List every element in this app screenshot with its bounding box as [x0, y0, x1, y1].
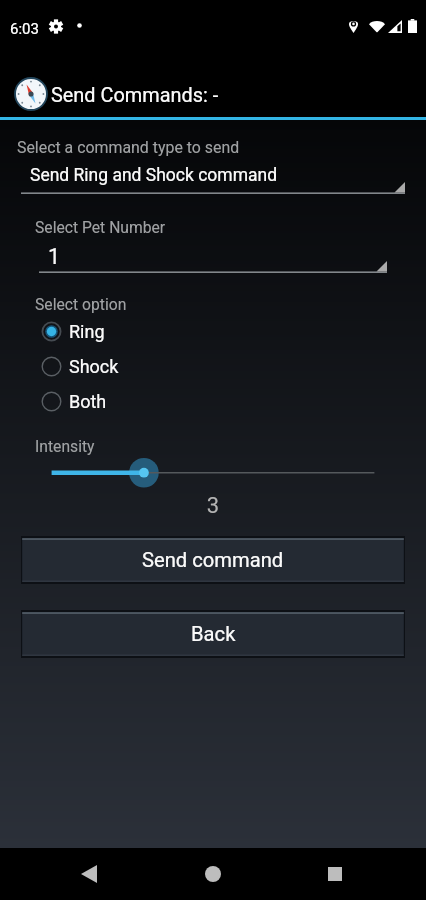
button[interactable]: Send Ring and Shock command	[21, 165, 405, 194]
staticText: Send Ring and Shock command	[30, 165, 278, 186]
staticText: Send command	[142, 548, 284, 572]
button[interactable]: Send command	[21, 536, 405, 584]
staticText: Shock	[69, 356, 119, 377]
staticText: Select a command type to send	[17, 138, 240, 157]
staticText: Select option	[35, 295, 127, 313]
staticText: 6:03	[10, 20, 39, 38]
staticText: Intensity	[35, 437, 95, 455]
staticText: Both	[69, 391, 107, 412]
staticText: 3	[0, 493, 426, 519]
staticText: Send Commands: -	[51, 84, 219, 107]
button[interactable]: Shock	[0, 349, 426, 384]
staticText: Back	[191, 622, 236, 646]
staticText: Select Pet Number	[35, 218, 166, 236]
staticText: 1	[48, 244, 61, 269]
button[interactable]: Intensity	[0, 458, 426, 488]
button[interactable]: Home	[187, 848, 239, 900]
button[interactable]: Both	[0, 384, 426, 419]
button[interactable]: Ring	[0, 314, 426, 349]
button[interactable]: 1	[39, 244, 387, 273]
button[interactable]: Recent apps	[309, 848, 361, 900]
button[interactable]: Back	[21, 610, 405, 658]
button[interactable]: Back	[63, 848, 115, 900]
staticText: Ring	[69, 321, 105, 342]
